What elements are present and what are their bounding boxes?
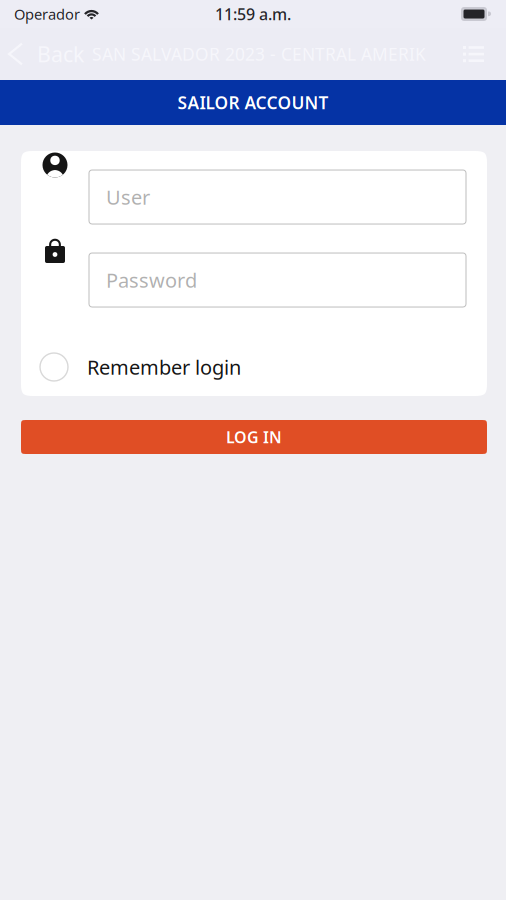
staticText: Password bbox=[106, 267, 197, 293]
staticText: SAILOR ACCOUNT bbox=[177, 91, 328, 114]
staticText: 11:59 a.m. bbox=[215, 3, 291, 25]
staticText: SAN SALVADOR 2023 - CENTRAL AMERIK bbox=[92, 42, 426, 65]
button[interactable]: Remember login bbox=[21, 346, 487, 388]
staticText: Remember login bbox=[87, 354, 241, 380]
staticText: User bbox=[106, 184, 150, 210]
staticText: Back bbox=[37, 40, 84, 68]
staticText: Operador bbox=[14, 4, 80, 24]
staticText: LOG IN bbox=[226, 426, 282, 448]
button[interactable]: LOG IN bbox=[21, 420, 487, 454]
